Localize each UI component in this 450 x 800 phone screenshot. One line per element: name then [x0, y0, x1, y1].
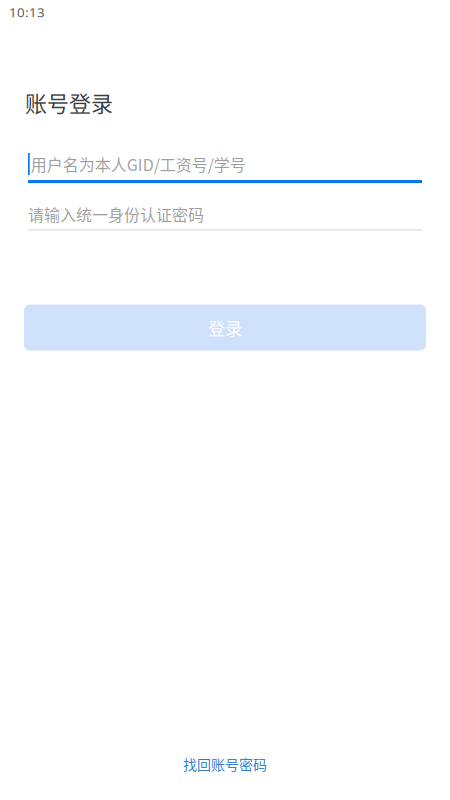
button[interactable]: 登录 [24, 305, 426, 351]
staticText: 用户名为本人GID/工资号/学号 [31, 152, 246, 176]
staticText: 登录 [208, 315, 242, 340]
staticText: 10:13 [9, 3, 45, 21]
button[interactable]: 用户名为本人GID/工资号/学号 [28, 152, 422, 183]
staticText: 账号登录 [25, 86, 113, 118]
button[interactable]: 找回账号密码 [173, 748, 277, 780]
staticText: 找回账号密码 [183, 754, 267, 774]
staticText: 请输入统一身份认证密码 [28, 202, 204, 226]
button[interactable]: 请输入统一身份认证密码 [28, 202, 422, 231]
